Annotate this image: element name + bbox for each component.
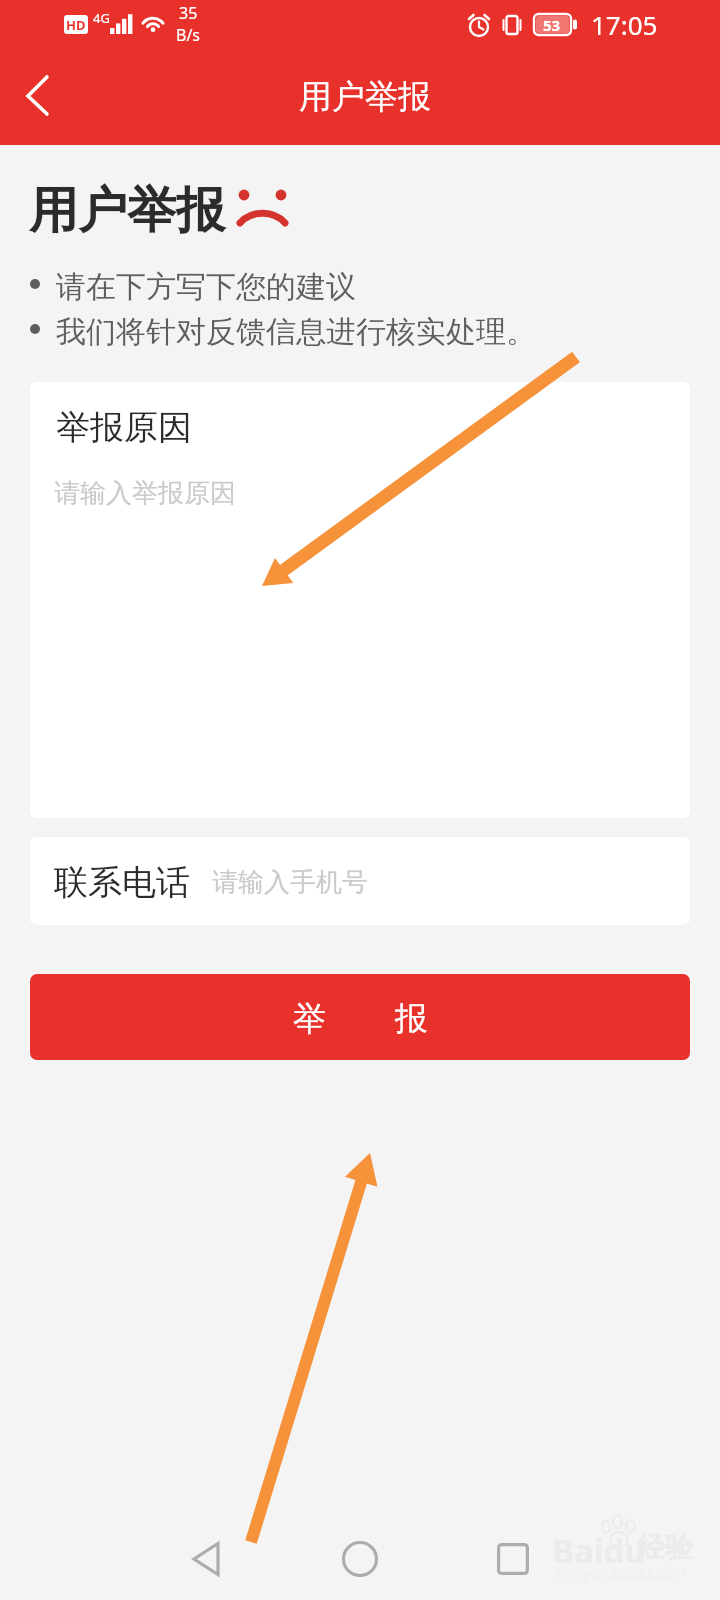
staticText: Baidu	[552, 1528, 646, 1573]
staticText: 用户举报	[29, 180, 225, 242]
staticText: 4G	[93, 9, 110, 27]
button[interactable]: Home	[287, 1514, 432, 1600]
staticText: B/s	[176, 24, 201, 46]
button[interactable]: Recents	[440, 1514, 585, 1600]
staticText: 35	[179, 2, 198, 24]
button[interactable]: 联系电话	[30, 837, 690, 925]
staticText: 请在下方写下您的建议	[56, 268, 356, 306]
button[interactable]: Back	[0, 58, 76, 134]
staticText: 请输入手机号	[212, 866, 368, 899]
staticText: 17:05	[591, 7, 658, 42]
staticText: 联系电话	[54, 861, 190, 904]
staticText: 请输入举报原因	[54, 477, 236, 510]
button[interactable]: 举报原因	[30, 382, 690, 818]
staticText: 我们将针对反馈信息进行核实处理。	[56, 313, 536, 351]
staticText: 用户举报	[299, 76, 431, 118]
button[interactable]: Back	[133, 1514, 278, 1600]
staticText: 举 报	[293, 995, 428, 1040]
staticText: 举报原因	[56, 406, 192, 449]
staticText: HD	[66, 16, 86, 34]
button[interactable]: 举 报	[30, 974, 690, 1060]
staticText: 经验	[637, 1530, 693, 1565]
staticText: 53	[543, 15, 561, 35]
